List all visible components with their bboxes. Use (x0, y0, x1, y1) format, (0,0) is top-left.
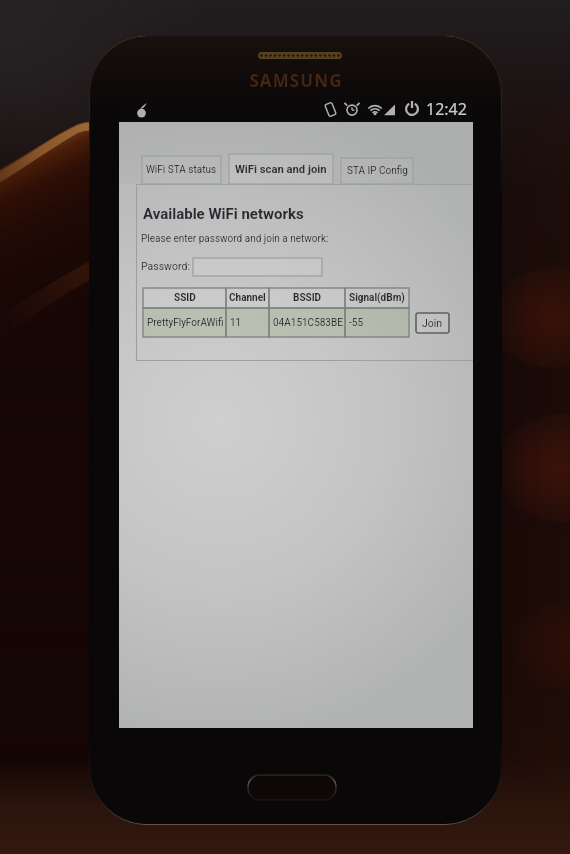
staticText: 12:42 (426, 98, 467, 120)
staticText: WiFi STA status (146, 164, 217, 176)
button[interactable]: Home (248, 775, 336, 800)
staticText: WiFi scan and join (235, 163, 327, 176)
staticText: 04A151C583BE (273, 317, 343, 329)
staticText: Signal(dBm) (349, 292, 405, 304)
staticText: BSSID (293, 292, 322, 304)
staticText: Please enter password and join a network… (141, 233, 329, 245)
staticText: Channel (229, 292, 266, 304)
button[interactable]: WiFi STA status (142, 156, 221, 184)
staticText: SAMSUNG (249, 69, 343, 92)
staticText: PrettyFlyForAWifi (147, 317, 224, 329)
staticText: SSID (174, 292, 196, 304)
button[interactable]: WiFi scan and join (229, 154, 333, 184)
staticText: -55 (349, 317, 364, 329)
button[interactable]: Join (416, 313, 449, 333)
staticText: 11 (230, 317, 242, 329)
staticText: STA IP Config (347, 165, 408, 177)
staticText: Available WiFi networks (143, 205, 304, 223)
staticText: Join (422, 317, 443, 329)
button[interactable]: STA IP Config (341, 158, 413, 184)
staticText: Password: (141, 260, 190, 272)
button[interactable]: Password field (193, 258, 322, 276)
